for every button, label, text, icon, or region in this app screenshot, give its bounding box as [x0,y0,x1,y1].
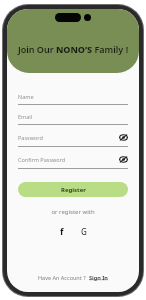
staticText: Password [18,134,43,141]
staticText: Have An Account ? [38,274,86,281]
staticText: G [81,226,87,237]
staticText: Confirm Password [18,156,66,163]
button[interactable]: Register [18,182,128,197]
staticText: f [60,225,64,237]
staticText: Name [18,93,34,100]
staticText: or register with [18,208,128,216]
button[interactable]: Sign up with Facebook [55,224,69,238]
staticText: Sign In [89,274,108,281]
staticText: Email [18,113,33,120]
button[interactable]: Confirm Password [18,155,128,164]
staticText: Register [61,186,86,194]
other: Toggle password visibility [119,155,128,164]
button[interactable]: Name [18,93,128,100]
button[interactable]: Sign In [89,274,108,281]
button[interactable]: Password [18,133,128,142]
button[interactable]: Email [18,113,128,120]
staticText: Join Our NONO’S Family ! [7,43,139,55]
other: Toggle password visibility [119,133,128,142]
button[interactable]: Sign up with Google [77,224,91,238]
